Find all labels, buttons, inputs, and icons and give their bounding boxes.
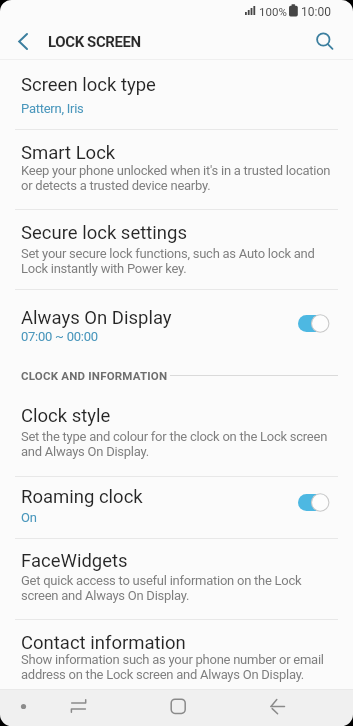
staticText: 100% — [259, 5, 287, 18]
staticText: Smart Lock — [21, 142, 116, 164]
button[interactable]: Clock style — [0, 388, 353, 476]
staticText: On — [21, 510, 37, 525]
staticText: screen and Always On Display. — [21, 588, 190, 603]
staticText: LOCK SCREEN — [48, 33, 141, 51]
staticText: Roaming clock — [21, 486, 143, 508]
staticText: Get quick access to useful information o… — [21, 573, 302, 588]
staticText: Set the type and colour for the clock on… — [21, 429, 328, 444]
staticText: CLOCK AND INFORMATION — [21, 369, 168, 382]
button[interactable]: Roaming clock — [0, 476, 353, 538]
staticText: Keep your phone unlocked when it's in a … — [21, 163, 331, 178]
button[interactable] — [6, 26, 38, 58]
staticText: Show information such as your phone numb… — [21, 652, 324, 667]
staticText: or detects a trusted device nearby. — [21, 178, 211, 193]
button[interactable]: FaceWidgets — [0, 538, 353, 619]
staticText: and Always On Display. — [21, 444, 149, 459]
staticText: Lock instantly with Power key. — [21, 261, 187, 276]
staticText: Always On Display — [21, 307, 172, 329]
button[interactable] — [163, 692, 193, 722]
button[interactable] — [262, 692, 292, 722]
button[interactable]: Screen lock type — [0, 60, 353, 129]
staticText: FaceWidgets — [21, 550, 128, 572]
staticText: Secure lock settings — [21, 222, 187, 244]
button[interactable] — [64, 692, 94, 722]
staticText: address on the Lock screen and Always On… — [21, 667, 305, 682]
button[interactable]: Contact information — [0, 619, 353, 689]
staticText: Pattern, Iris — [21, 101, 84, 116]
button[interactable] — [16, 699, 31, 714]
staticText: Clock style — [21, 405, 111, 427]
button[interactable]: Secure lock settings — [0, 210, 353, 289]
button[interactable]: Always On Display — [0, 290, 353, 354]
staticText: Screen lock type — [21, 74, 156, 96]
staticText: Set your secure lock functions, such as … — [21, 246, 315, 261]
button[interactable] — [308, 24, 342, 58]
button[interactable]: Smart Lock — [0, 130, 353, 209]
staticText: 07:00 ~ 00:00 — [21, 329, 98, 344]
staticText: 10:00 — [301, 5, 331, 19]
staticText: Contact information — [21, 632, 186, 654]
